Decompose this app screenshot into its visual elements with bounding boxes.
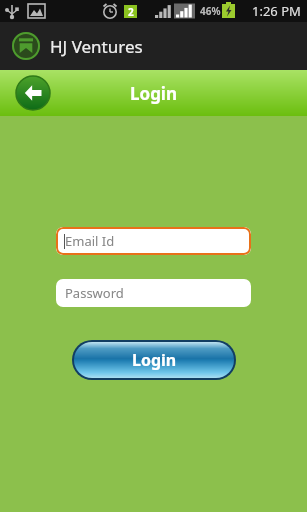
staticText: 1:26 PM (252, 2, 301, 20)
button[interactable]: Email Id (56, 227, 251, 255)
button[interactable]: Back (16, 76, 50, 110)
staticText: Login (0, 82, 307, 105)
staticText: HJ Ventures (50, 35, 143, 58)
button[interactable]: Password (56, 279, 251, 307)
staticText: Email Id (65, 232, 115, 250)
staticText: 2 (128, 5, 134, 18)
staticText: Password (65, 284, 124, 302)
staticText: Login (132, 349, 177, 371)
button[interactable]: Login (72, 340, 236, 380)
staticText: 46% (200, 4, 221, 18)
